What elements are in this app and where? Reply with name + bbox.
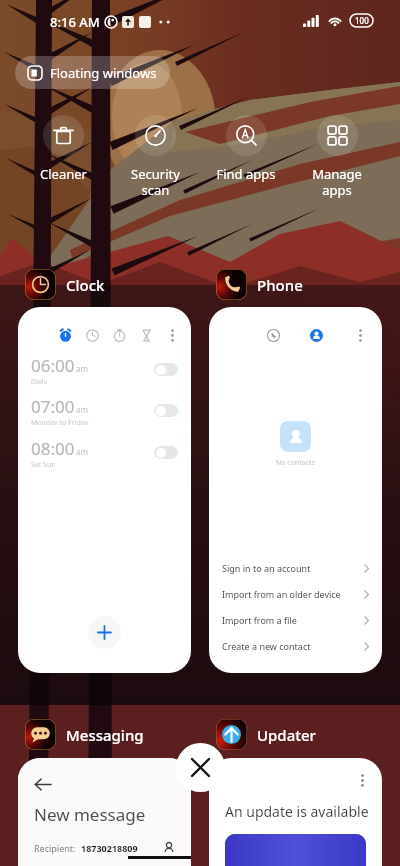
button[interactable]: Create a new contact [209,633,382,659]
button[interactable]: Close all [176,743,225,792]
staticText: Create a new contact [222,640,311,652]
staticText: 18730218809 [81,842,138,854]
staticText: Security scan [131,165,180,198]
button[interactable]: 06:00 [18,307,191,673]
staticText: An update is available [225,802,369,821]
button[interactable]: Find apps [201,115,291,183]
staticText: 07:00 [31,395,75,418]
button[interactable]: Updater [216,719,316,750]
button[interactable]: 06:00 [18,354,191,384]
button[interactable]: Floating windows [15,56,170,89]
staticText: Find apps [216,165,276,183]
staticText: 8:16 AM [50,13,100,31]
button[interactable]: Cleaner [18,115,108,183]
staticText: am [76,446,88,457]
staticText: Sign in to an account [222,562,311,574]
staticText: am [76,363,88,374]
staticText: 06:00 [31,354,75,377]
button[interactable]: An update is available [209,758,382,866]
button[interactable]: Clock [25,269,105,300]
staticText: Recipient: [34,842,76,854]
button[interactable]: No contacts [209,307,382,673]
staticText: Sat Sun [31,460,56,467]
staticText: am [76,404,88,415]
staticText: Monday to Friday [31,418,89,425]
button[interactable]: Security scan [110,115,200,198]
staticText: Cleaner [40,165,87,183]
staticText: Messaging [66,725,144,745]
button[interactable]: Import from an older device [209,581,382,607]
button[interactable]: 07:00 [18,395,191,425]
staticText: Import from a file [222,614,297,626]
staticText: 08:00 [31,437,75,460]
button[interactable]: Add alarm [88,616,121,649]
staticText: 100 [355,15,369,26]
staticText: Phone [257,275,303,295]
staticText: No contacts [276,458,315,468]
staticText: Floating windows [50,64,157,82]
staticText: Clock [66,275,105,295]
staticText: Daily [31,377,48,384]
staticText: Updater [257,725,316,745]
staticText: Import from an older device [222,588,341,600]
button[interactable]: Sign in to an account [209,555,382,581]
button[interactable]: Messaging [25,719,144,750]
button[interactable]: Manage apps [292,115,382,198]
button[interactable]: 08:00 [18,437,191,467]
button[interactable]: Import from a file [209,607,382,633]
staticText: Manage apps [312,165,362,198]
button[interactable]: New message [18,758,191,866]
staticText: New message [34,803,146,826]
button[interactable]: Phone [216,269,303,300]
